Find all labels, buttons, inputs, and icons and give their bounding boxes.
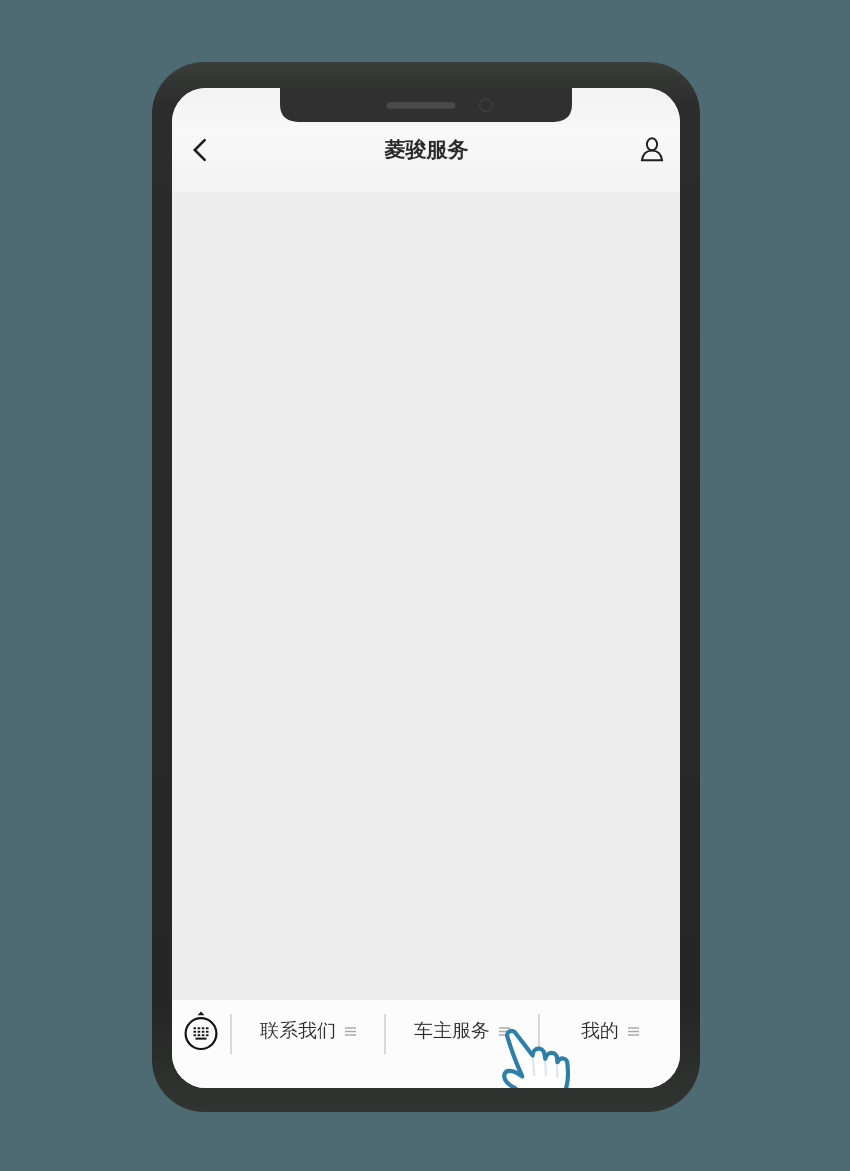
button[interactable]: Account: [624, 122, 680, 178]
button[interactable]: 联系我们: [232, 1000, 384, 1062]
staticText: 联系我们: [260, 1019, 336, 1043]
staticText: 菱骏服务: [384, 137, 468, 163]
button[interactable]: 车主服务: [386, 1000, 538, 1062]
button[interactable]: Back: [172, 122, 228, 178]
button[interactable]: Keyboard: [172, 1000, 230, 1062]
staticText: 我的: [581, 1019, 619, 1043]
button[interactable]: 我的: [540, 1000, 680, 1062]
staticText: 车主服务: [414, 1019, 490, 1043]
